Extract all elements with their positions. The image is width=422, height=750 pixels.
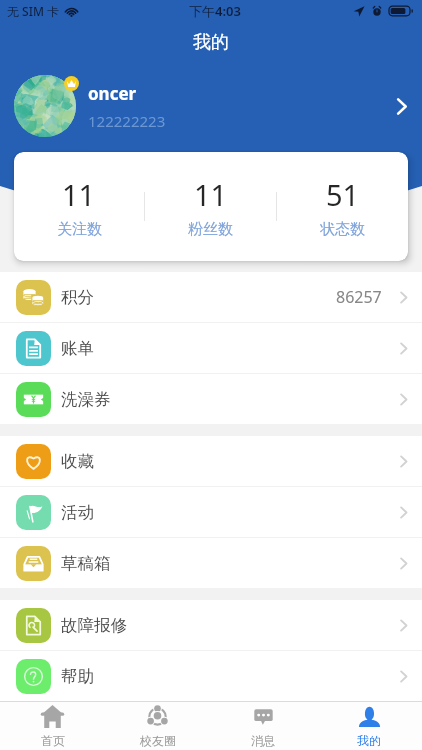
- staticText: 故障报修: [61, 615, 127, 636]
- button[interactable]: oncer: [0, 62, 422, 150]
- button[interactable]: 消息: [210, 702, 316, 750]
- button[interactable]: 我的: [316, 702, 422, 750]
- button[interactable]: 帮助: [0, 651, 422, 701]
- button[interactable]: 洗澡券: [0, 374, 422, 424]
- button[interactable]: 故障报修: [0, 600, 422, 650]
- staticText: 收藏: [61, 451, 94, 472]
- button[interactable]: Profile details: [386, 91, 416, 121]
- button[interactable]: 校友圈: [105, 702, 210, 750]
- staticText: 账单: [61, 338, 94, 359]
- button[interactable]: 51: [277, 152, 408, 261]
- staticText: 帮助: [61, 666, 94, 687]
- button[interactable]: 活动: [0, 487, 422, 537]
- staticText: 洗澡券: [61, 389, 111, 410]
- button[interactable]: 账单: [0, 323, 422, 373]
- staticText: 关注数: [57, 220, 102, 239]
- button[interactable]: 收藏: [0, 436, 422, 486]
- staticText: 草稿箱: [61, 553, 111, 574]
- staticText: 无 SIM 卡: [7, 3, 60, 19]
- button[interactable]: 11: [145, 152, 276, 261]
- staticText: 消息: [251, 733, 275, 748]
- staticText: 首页: [41, 733, 65, 748]
- staticText: 86257: [336, 286, 382, 308]
- button[interactable]: 积分: [0, 272, 422, 322]
- staticText: 我的: [357, 733, 381, 748]
- staticText: 活动: [61, 502, 94, 523]
- staticText: 下午4:03: [189, 2, 241, 20]
- staticText: 状态数: [320, 220, 365, 239]
- staticText: 122222223: [88, 111, 166, 131]
- button[interactable]: 11: [14, 152, 144, 261]
- staticText: 51: [326, 175, 360, 214]
- button[interactable]: 草稿箱: [0, 538, 422, 588]
- staticText: 粉丝数: [188, 220, 233, 239]
- staticText: 校友圈: [140, 733, 176, 748]
- staticText: 积分: [61, 287, 94, 308]
- staticText: oncer: [88, 82, 137, 105]
- staticText: 我的: [193, 31, 229, 54]
- staticText: 11: [62, 175, 96, 214]
- staticText: 11: [194, 175, 228, 214]
- button[interactable]: 首页: [0, 702, 105, 750]
